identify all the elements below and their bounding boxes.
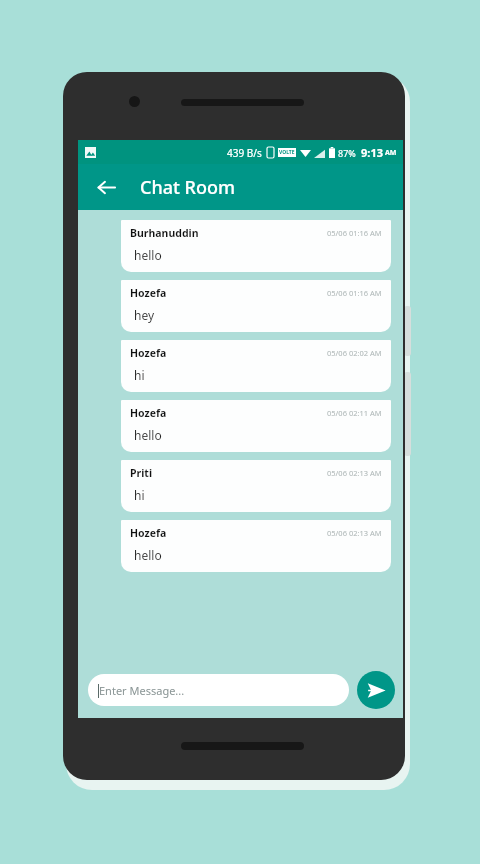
staticText: 05/06 01:16 AM bbox=[327, 228, 382, 238]
button[interactable]: Hozefa bbox=[121, 400, 391, 452]
staticText: hello bbox=[134, 547, 162, 563]
button[interactable]: Hozefa bbox=[121, 340, 391, 392]
staticText: hello bbox=[134, 247, 162, 263]
staticText: 87% bbox=[338, 147, 356, 159]
button[interactable]: Priti bbox=[121, 460, 391, 512]
staticText: Hozefa bbox=[130, 406, 167, 420]
button[interactable]: Back bbox=[86, 167, 126, 207]
button[interactable]: Hozefa bbox=[121, 280, 391, 332]
staticText: 05/06 02:13 AM bbox=[327, 468, 382, 478]
button[interactable]: Hozefa bbox=[121, 520, 391, 572]
staticText: hey bbox=[134, 307, 155, 323]
staticText: VOLTE bbox=[279, 149, 295, 156]
staticText: AM bbox=[385, 148, 397, 158]
button[interactable]: Send bbox=[357, 671, 395, 709]
staticText: hello bbox=[134, 427, 162, 443]
button[interactable]: Enter Message... bbox=[88, 674, 349, 706]
staticText: Chat Room bbox=[140, 175, 236, 200]
staticText: 05/06 01:16 AM bbox=[327, 288, 382, 298]
staticText: 05/06 02:02 AM bbox=[327, 348, 382, 358]
staticText: 9:13 bbox=[361, 145, 383, 160]
staticText: Enter Message... bbox=[99, 683, 185, 698]
button[interactable]: Burhanuddin bbox=[121, 220, 391, 272]
staticText: Hozefa bbox=[130, 286, 167, 300]
staticText: Hozefa bbox=[130, 526, 167, 540]
staticText: Priti bbox=[130, 466, 153, 480]
staticText: 05/06 02:11 AM bbox=[327, 408, 382, 418]
staticText: hi bbox=[134, 367, 145, 383]
staticText: hi bbox=[134, 487, 145, 503]
staticText: 05/06 02:13 AM bbox=[327, 528, 382, 538]
staticText: 439 B/s bbox=[227, 146, 262, 160]
staticText: Burhanuddin bbox=[130, 226, 199, 240]
staticText: Hozefa bbox=[130, 346, 167, 360]
